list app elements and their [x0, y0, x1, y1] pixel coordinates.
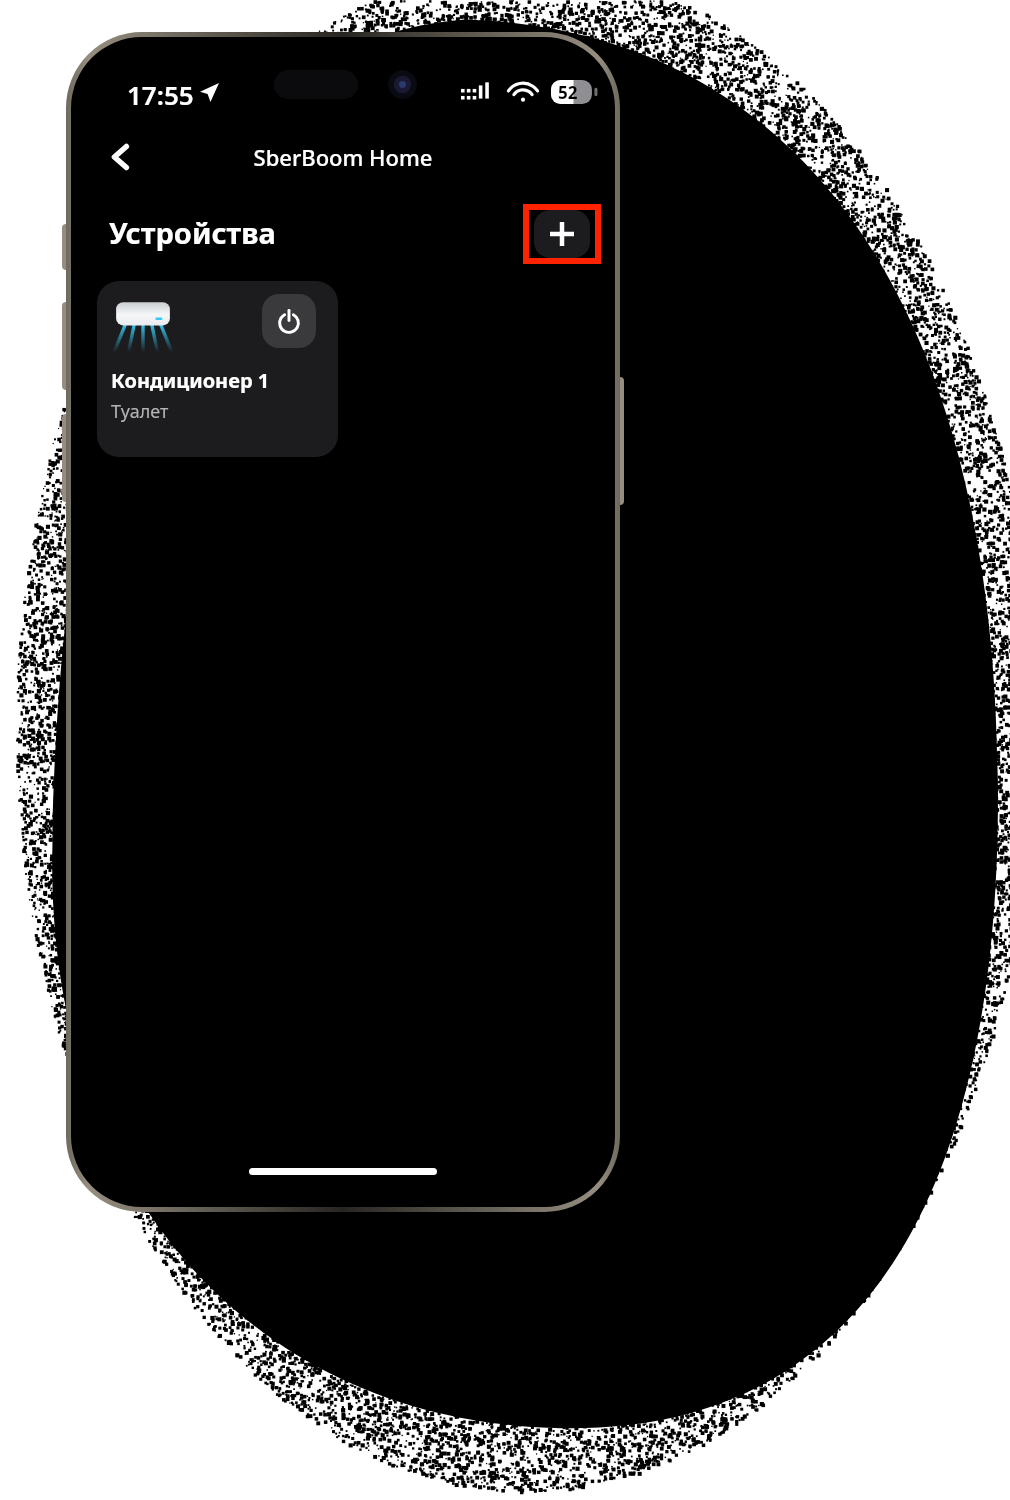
staticText: 17:55: [127, 77, 194, 112]
staticText: Туалет: [111, 399, 169, 424]
button[interactable]: Power: [97, 281, 338, 457]
staticText: SberBoom Home: [71, 142, 615, 172]
staticText: Устройства: [109, 213, 276, 252]
button[interactable]: Power: [262, 294, 316, 348]
staticText: Кондиционер 1: [111, 367, 270, 394]
button[interactable]: Add device: [534, 210, 590, 258]
button[interactable]: Back: [93, 129, 149, 185]
staticText: 52: [558, 81, 578, 104]
